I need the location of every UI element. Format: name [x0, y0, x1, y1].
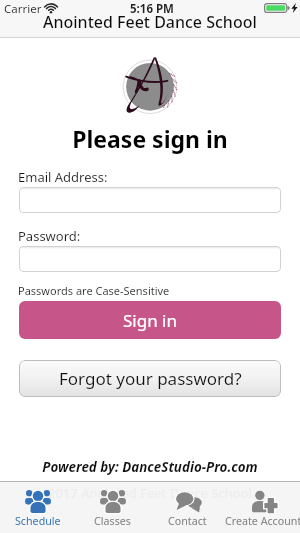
staticText: Please sign in	[0, 123, 300, 154]
staticText: 2017 Anointed Feet Dance School	[0, 484, 300, 502]
button[interactable]: Classes	[75, 482, 150, 533]
staticText: Schedule	[15, 514, 61, 529]
button[interactable]	[19, 246, 281, 272]
staticText: Forgot your password?	[59, 367, 242, 390]
button[interactable]: Contact	[150, 482, 225, 533]
staticText: Create Account	[225, 514, 300, 529]
staticText: 5:16 PM	[130, 1, 174, 16]
button[interactable]: Schedule	[0, 482, 75, 533]
button[interactable]: Sign in	[19, 301, 281, 339]
button[interactable]: Create Account	[225, 482, 300, 533]
staticText: Contact	[168, 514, 207, 529]
staticText: Classes	[94, 514, 131, 529]
staticText: Carrier	[4, 1, 42, 16]
staticText: Email Address:	[18, 168, 108, 186]
staticText: Password:	[18, 227, 81, 245]
button[interactable]	[19, 187, 281, 213]
staticText: Powered by: DanceStudio-Pro.com	[0, 458, 300, 476]
button[interactable]: Forgot your password?	[19, 360, 281, 397]
staticText: Sign in	[123, 309, 177, 332]
staticText: Anointed Feet Dance School	[43, 11, 257, 32]
staticText: Passwords are Case-Sensitive	[18, 283, 170, 298]
